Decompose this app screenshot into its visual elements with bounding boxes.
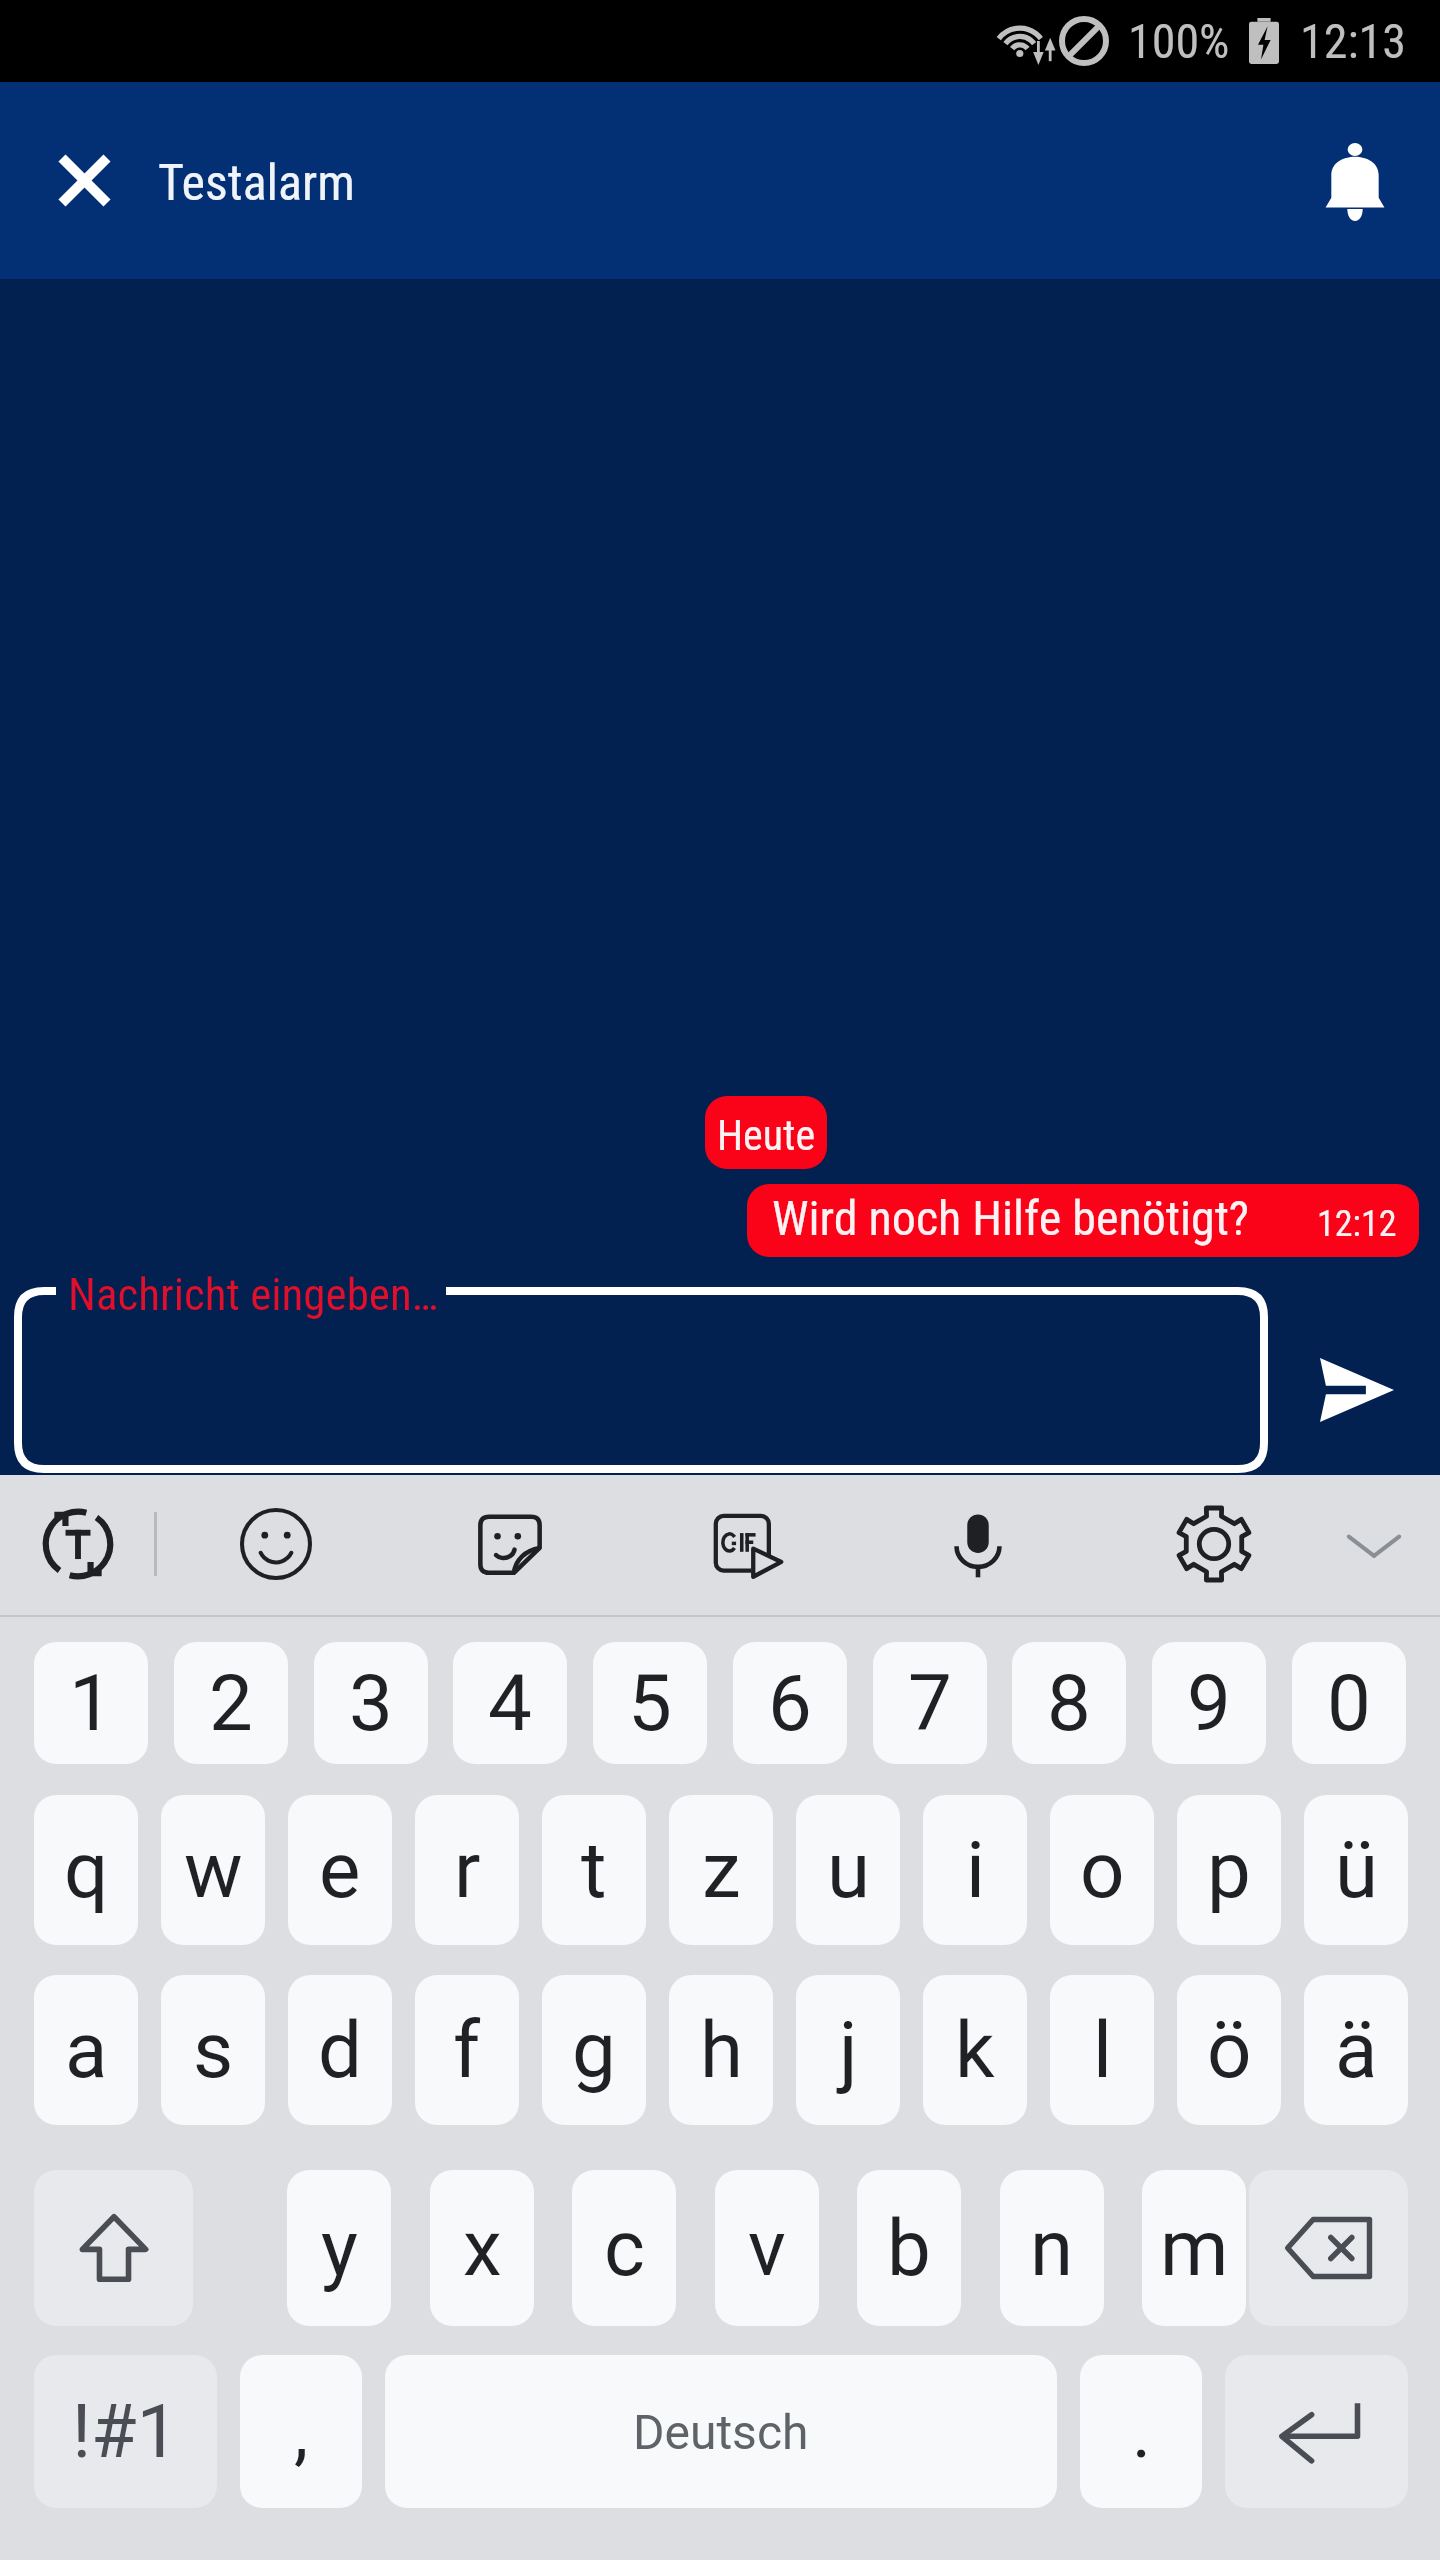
staticText: ä	[1335, 2005, 1378, 2096]
button[interactable]: b	[857, 2170, 961, 2326]
staticText: z	[702, 1825, 741, 1916]
staticText: r	[454, 1825, 481, 1916]
button[interactable]: g	[542, 1975, 646, 2125]
button[interactable]: 2	[174, 1642, 288, 1764]
button[interactable]: m	[1142, 2170, 1246, 2326]
staticText: Nachricht eingeben…	[68, 1268, 439, 1321]
staticText: 7	[908, 1658, 952, 1749]
button[interactable]: l	[1050, 1975, 1154, 2125]
button[interactable]: r	[415, 1795, 519, 1945]
button[interactable]: a	[34, 1975, 138, 2125]
button[interactable]: Backspace	[1249, 2170, 1408, 2326]
staticText: p	[1207, 1825, 1251, 1916]
button[interactable]: Shift	[34, 2170, 193, 2326]
staticText: 12:12	[1317, 1203, 1397, 1245]
button[interactable]: j	[796, 1975, 900, 2125]
staticText: w	[184, 1825, 243, 1916]
staticText: Deutsch	[633, 2404, 809, 2460]
button[interactable]: ü	[1304, 1795, 1408, 1945]
button[interactable]: o	[1050, 1795, 1154, 1945]
staticText: s	[193, 2005, 234, 2096]
staticText: v	[748, 2203, 786, 2294]
button[interactable]: 1	[34, 1642, 148, 1764]
staticText: j	[839, 2005, 858, 2096]
button[interactable]: p	[1177, 1795, 1281, 1945]
staticText: y	[321, 2203, 358, 2294]
staticText: 12:13	[1300, 13, 1406, 69]
staticText: 4	[488, 1658, 532, 1749]
button[interactable]: Notifications	[1285, 82, 1425, 279]
button[interactable]: z	[669, 1795, 773, 1945]
staticText: ö	[1207, 2005, 1252, 2096]
button[interactable]: c	[572, 2170, 676, 2326]
button[interactable]: !#1	[34, 2355, 217, 2508]
staticText: c	[604, 2203, 645, 2294]
staticText: l	[1093, 2005, 1112, 2096]
button[interactable]: q	[34, 1795, 138, 1945]
button[interactable]: 4	[453, 1642, 567, 1764]
staticText: 8	[1047, 1658, 1091, 1749]
button[interactable]: h	[669, 1975, 773, 2125]
staticText: x	[463, 2203, 502, 2294]
button[interactable]: .	[1080, 2355, 1202, 2508]
button[interactable]: ,	[240, 2355, 362, 2508]
button[interactable]: Close	[26, 82, 142, 279]
button[interactable]: e	[288, 1795, 392, 1945]
staticText: .	[1132, 2390, 1151, 2474]
button[interactable]: 0	[1292, 1642, 1406, 1764]
staticText: 0	[1327, 1658, 1371, 1749]
button[interactable]: 8	[1012, 1642, 1126, 1764]
button[interactable]: Voice input	[920, 1486, 1036, 1602]
button[interactable]: Emoji	[218, 1486, 334, 1602]
staticText: 5	[628, 1658, 672, 1749]
button[interactable]: Enter	[1225, 2355, 1408, 2508]
staticText: q	[64, 1825, 109, 1916]
button[interactable]: 7	[873, 1642, 987, 1764]
button[interactable]: Hide keyboard	[1316, 1486, 1432, 1602]
staticText: 6	[768, 1658, 812, 1749]
staticText: f	[453, 2005, 481, 2096]
staticText: 1	[69, 1658, 113, 1749]
button[interactable]: 9	[1152, 1642, 1266, 1764]
button[interactable]: 6	[733, 1642, 847, 1764]
staticText: g	[572, 2005, 616, 2096]
staticText: Heute	[717, 1111, 816, 1160]
button[interactable]: Deutsch	[385, 2355, 1057, 2508]
staticText: 3	[349, 1658, 393, 1749]
staticText: a	[65, 2005, 108, 2096]
staticText: Wird noch Hilfe benötigt?	[772, 1190, 1250, 1246]
button[interactable]: d	[288, 1975, 392, 2125]
button[interactable]: Translate	[20, 1486, 136, 1602]
button[interactable]: t	[542, 1795, 646, 1945]
staticText: t	[581, 1825, 607, 1916]
button[interactable]: ö	[1177, 1975, 1281, 2125]
staticText: i	[966, 1825, 985, 1916]
button[interactable]: w	[161, 1795, 265, 1945]
button[interactable]: u	[796, 1795, 900, 1945]
button[interactable]: f	[415, 1975, 519, 2125]
button[interactable]: v	[715, 2170, 819, 2326]
button[interactable]: ä	[1304, 1975, 1408, 2125]
button[interactable]: Heute	[705, 1096, 827, 1169]
button[interactable]: 5	[593, 1642, 707, 1764]
button[interactable]: y	[287, 2170, 391, 2326]
staticText: o	[1080, 1825, 1125, 1916]
button[interactable]: Send	[1292, 1325, 1422, 1455]
staticText: h	[700, 2005, 743, 2096]
staticText: k	[955, 2005, 995, 2096]
staticText: d	[318, 2005, 362, 2096]
staticText: e	[319, 1825, 361, 1916]
button[interactable]	[14, 1287, 1268, 1473]
button[interactable]: Settings	[1156, 1486, 1272, 1602]
button[interactable]: n	[1000, 2170, 1104, 2326]
button[interactable]: k	[923, 1975, 1027, 2125]
button[interactable]: GIF	[689, 1486, 805, 1602]
button[interactable]: i	[923, 1795, 1027, 1945]
button[interactable]: s	[161, 1975, 265, 2125]
button[interactable]: 3	[314, 1642, 428, 1764]
button[interactable]: Stickers	[452, 1486, 568, 1602]
staticText: u	[827, 1825, 870, 1916]
button[interactable]: Wird noch Hilfe benötigt?	[747, 1184, 1419, 1257]
staticText: 2	[209, 1658, 253, 1749]
button[interactable]: x	[430, 2170, 534, 2326]
